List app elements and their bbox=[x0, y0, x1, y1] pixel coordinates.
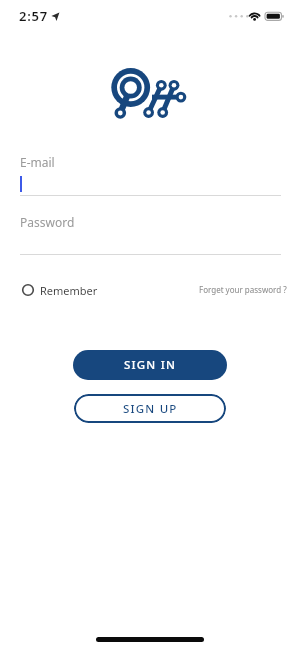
button[interactable] bbox=[20, 152, 281, 196]
staticText: Password bbox=[20, 214, 75, 230]
button[interactable] bbox=[20, 212, 281, 255]
staticText: 2:57 bbox=[19, 7, 49, 25]
staticText: Remember bbox=[40, 283, 98, 298]
button[interactable]: Remember bbox=[14, 276, 124, 304]
button[interactable]: SIGN IN bbox=[73, 350, 227, 380]
button[interactable]: Forget your password ? bbox=[160, 278, 287, 300]
staticText: SIGN IN bbox=[124, 357, 177, 373]
button[interactable]: SIGN UP bbox=[74, 394, 226, 423]
staticText: SIGN UP bbox=[123, 401, 178, 417]
staticText: E-mail bbox=[20, 154, 55, 170]
staticText: Forget your password ? bbox=[199, 284, 287, 295]
